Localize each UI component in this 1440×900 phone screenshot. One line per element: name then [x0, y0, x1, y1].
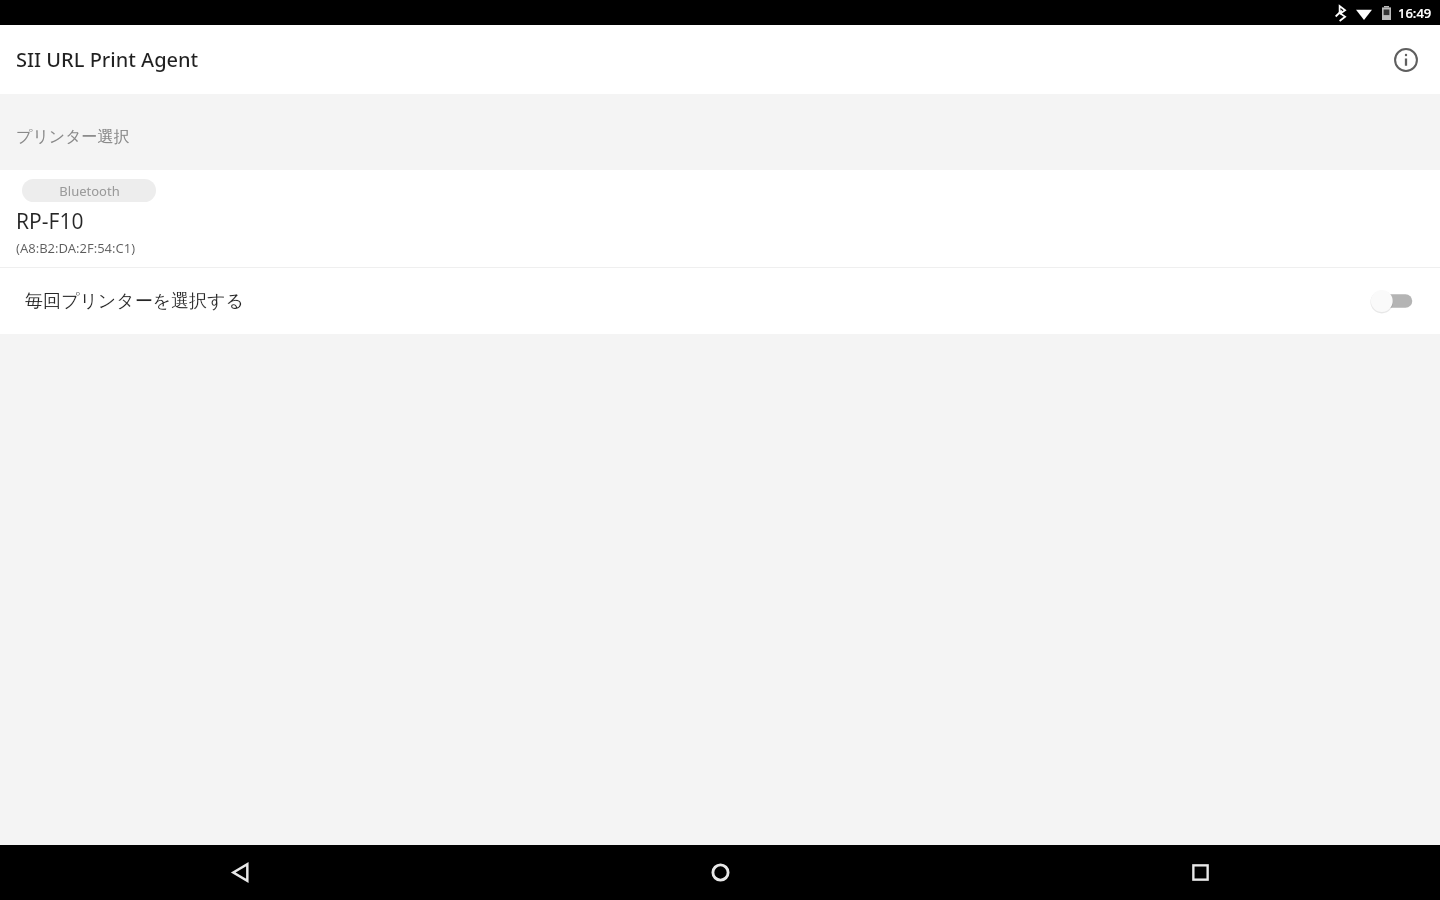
- button[interactable]: Home: [480, 845, 960, 900]
- staticText: SII URL Print Agent: [16, 46, 199, 73]
- button[interactable]: Information: [1382, 36, 1430, 84]
- staticText: 毎回プリンターを選択する: [25, 290, 244, 313]
- staticText: RP-F10: [16, 207, 84, 236]
- button[interactable]: Select printer every time toggle: [1370, 288, 1414, 314]
- button[interactable]: 毎回プリンターを選択する: [0, 268, 1440, 334]
- staticText: (A8:B2:DA:2F:54:C1): [16, 239, 136, 257]
- button[interactable]: Recent apps: [960, 845, 1440, 900]
- staticText: 16:49: [1398, 4, 1432, 22]
- staticText: Bluetooth: [59, 182, 120, 200]
- button[interactable]: Back: [0, 845, 480, 900]
- button[interactable]: Bluetooth: [0, 170, 1440, 267]
- staticText: プリンター選択: [16, 127, 130, 147]
